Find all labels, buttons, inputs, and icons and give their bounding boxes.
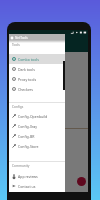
- staticText: App reviews: [18, 174, 38, 179]
- staticText: Config-Store: [18, 144, 39, 149]
- staticText: Config-Openbuild: [18, 114, 48, 119]
- button[interactable]: Config-Xray: [9, 121, 65, 131]
- button[interactable]: Add: [77, 177, 86, 186]
- button[interactable]: Config-Store: [9, 141, 65, 151]
- button[interactable]: App reviews: [9, 171, 65, 181]
- button[interactable]: Proxy tools: [9, 74, 65, 84]
- staticText: Proxy tools: [18, 77, 37, 82]
- staticText: Checkers: [18, 87, 33, 92]
- button[interactable]: Config-Openbuild: [9, 111, 65, 121]
- staticText: Tools: [12, 43, 20, 47]
- staticText: Community: [12, 164, 30, 168]
- button[interactable]: Config-BR: [9, 131, 65, 141]
- staticText: Combo tools: [18, 57, 39, 62]
- staticText: Dark tools: [18, 67, 35, 72]
- button[interactable]: Contact us: [9, 181, 65, 191]
- button[interactable]: Checkers: [9, 84, 65, 94]
- staticText: Configs: [12, 105, 24, 109]
- staticText: Config-Xray: [18, 124, 38, 129]
- staticText: Contact us: [18, 184, 36, 189]
- staticText: NetTools: [15, 36, 28, 40]
- staticText: Config-BR: [18, 134, 35, 139]
- button[interactable]: Dark tools: [9, 64, 65, 74]
- button[interactable]: Combo tools: [9, 54, 65, 64]
